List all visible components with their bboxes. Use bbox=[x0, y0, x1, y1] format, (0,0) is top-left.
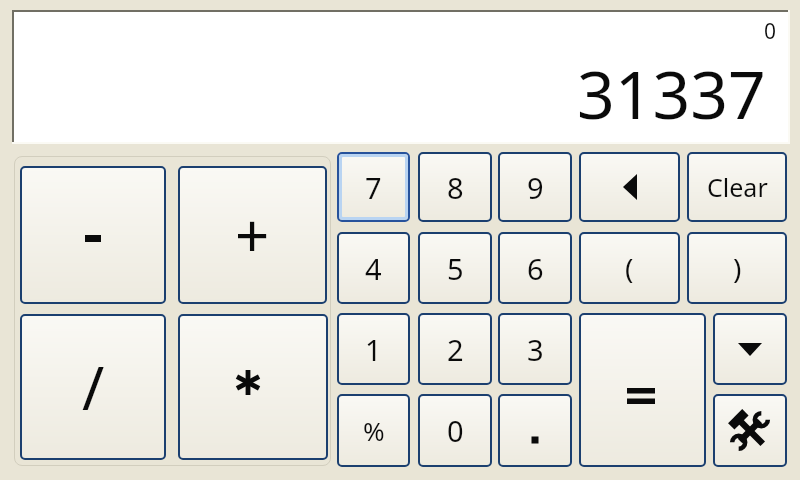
staticText: 0 bbox=[447, 411, 464, 450]
staticText: 3 bbox=[527, 330, 544, 369]
button[interactable]: ( bbox=[579, 232, 680, 304]
button[interactable]: 6 bbox=[498, 232, 572, 304]
staticText: 5 bbox=[447, 249, 464, 288]
button[interactable]: 2 bbox=[418, 313, 492, 385]
button[interactable]: 9 bbox=[498, 152, 572, 222]
staticText: 6 bbox=[527, 249, 544, 288]
staticText: + bbox=[235, 194, 270, 276]
staticText: 9 bbox=[527, 168, 544, 207]
staticText: % bbox=[363, 413, 385, 448]
button[interactable]: Clear bbox=[687, 152, 787, 222]
staticText: 8 bbox=[447, 168, 464, 207]
button[interactable] bbox=[713, 394, 787, 467]
staticText: 0 bbox=[764, 17, 777, 46]
button[interactable] bbox=[498, 394, 572, 467]
button[interactable]: 8 bbox=[418, 152, 492, 222]
staticText: 4 bbox=[365, 249, 382, 288]
button[interactable]: 7 bbox=[337, 152, 410, 222]
button[interactable] bbox=[579, 313, 706, 467]
button[interactable] bbox=[579, 152, 680, 222]
button[interactable]: / bbox=[20, 314, 166, 460]
staticText: 2 bbox=[447, 330, 464, 369]
staticText: 1 bbox=[365, 330, 382, 369]
button[interactable]: 3 bbox=[498, 313, 572, 385]
staticText: ( bbox=[625, 249, 634, 287]
button[interactable]: 1 bbox=[337, 313, 410, 385]
button[interactable] bbox=[178, 314, 328, 460]
button[interactable] bbox=[20, 166, 166, 304]
button[interactable]: ) bbox=[687, 232, 787, 304]
button[interactable]: 4 bbox=[337, 232, 410, 304]
button[interactable] bbox=[713, 313, 787, 385]
staticText: / bbox=[82, 346, 105, 428]
button[interactable]: % bbox=[337, 394, 410, 467]
button[interactable]: 5 bbox=[418, 232, 492, 304]
staticText: ) bbox=[733, 249, 742, 287]
button[interactable]: + bbox=[178, 166, 327, 304]
staticText: 7 bbox=[365, 168, 382, 207]
staticText: Clear bbox=[707, 170, 768, 204]
button[interactable]: 0 bbox=[418, 394, 492, 467]
staticText: 31337 bbox=[577, 48, 766, 138]
